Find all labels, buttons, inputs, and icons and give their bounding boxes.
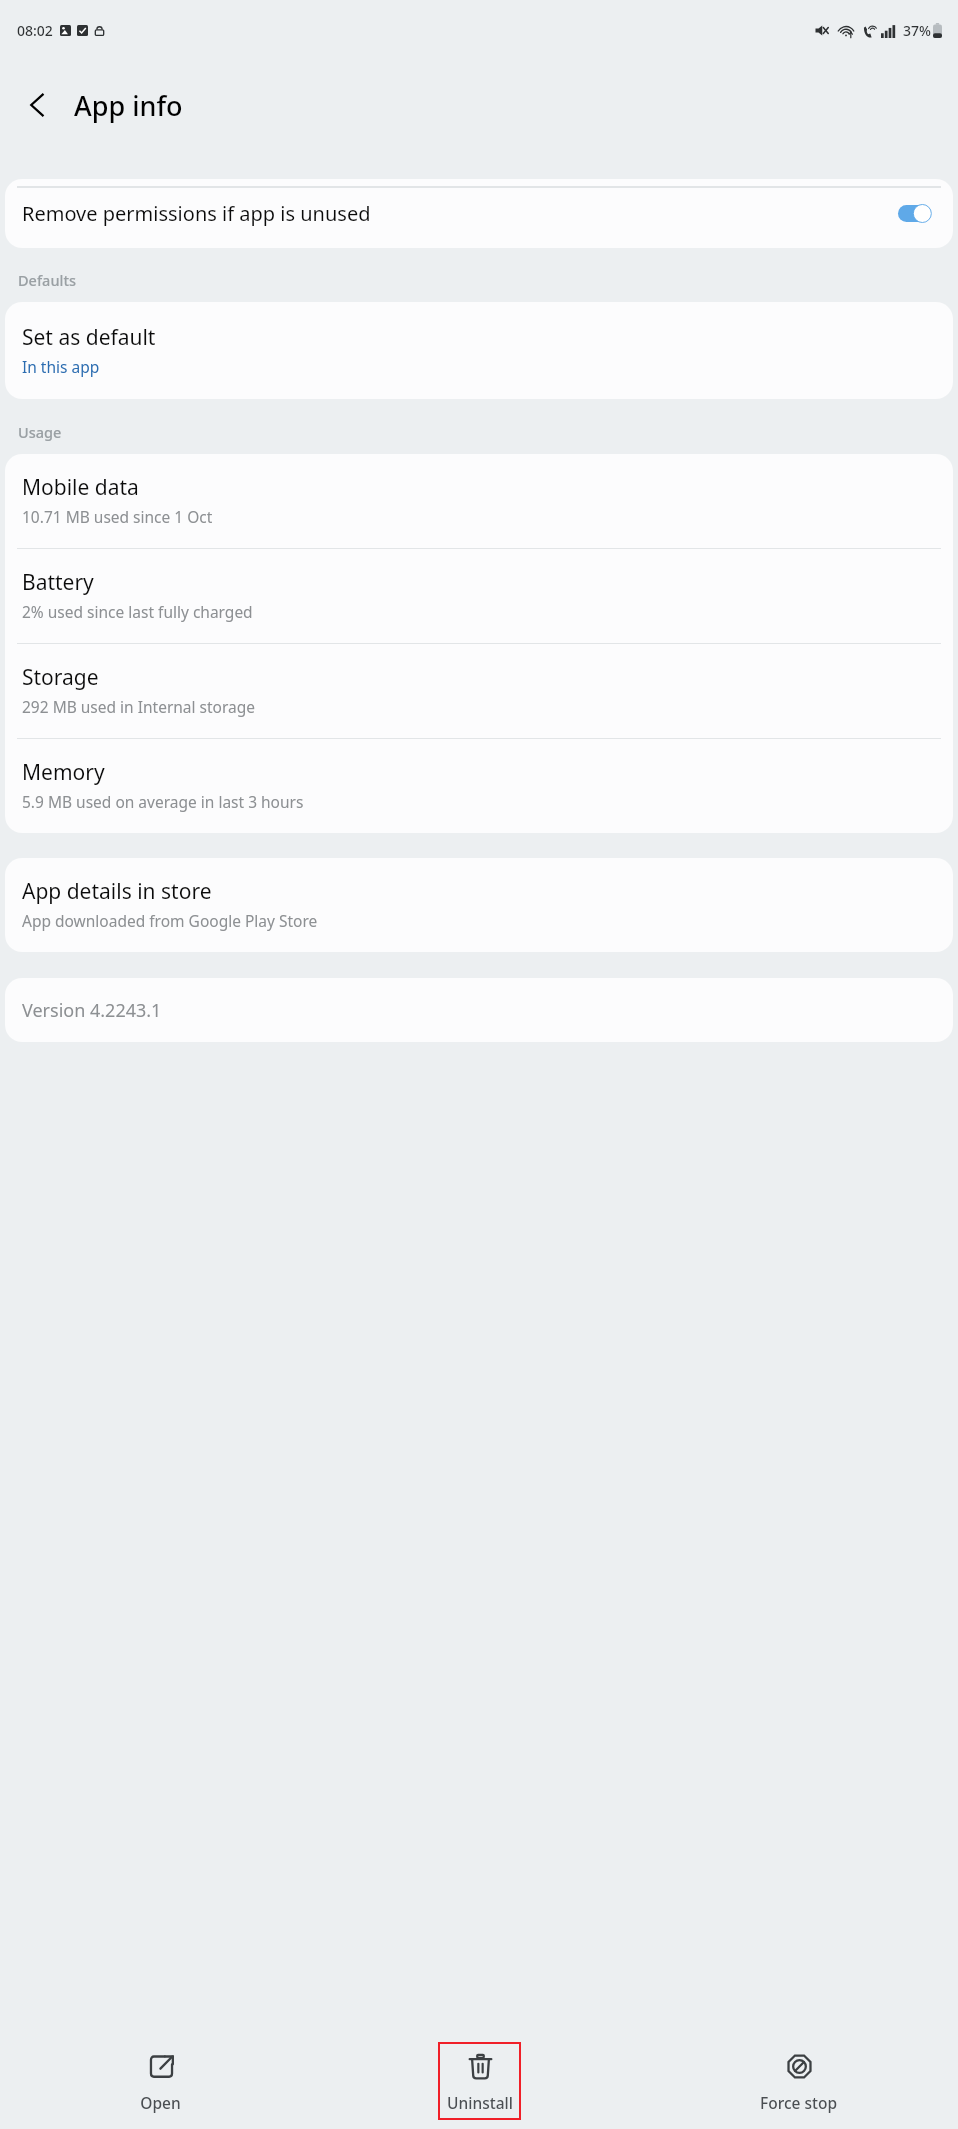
staticText: Force stop — [760, 2092, 837, 2113]
staticText: 5.9 MB used on average in last 3 hours — [22, 791, 304, 812]
staticText: 10.71 MB used since 1 Oct — [22, 506, 213, 527]
staticText: App details in store — [22, 877, 212, 906]
button[interactable]: Mobile data — [5, 454, 953, 548]
staticText: Remove permissions if app is unused — [22, 200, 890, 227]
button[interactable]: Storage — [5, 644, 953, 738]
staticText: Version 4.2243.1 — [22, 998, 162, 1023]
staticText: Defaults — [18, 270, 76, 290]
button[interactable]: Force stop — [757, 2042, 840, 2120]
staticText: Storage — [22, 663, 99, 692]
button[interactable]: Set as default — [5, 302, 953, 399]
staticText: In this app — [22, 356, 100, 377]
staticText: Uninstall — [447, 2092, 513, 2113]
staticText: Battery — [22, 568, 94, 597]
staticText: Open — [140, 2092, 181, 2113]
staticText: 37% — [903, 21, 931, 40]
staticText: 292 MB used in Internal storage — [22, 696, 256, 717]
staticText: 2% used since last fully charged — [22, 601, 253, 622]
other: Uninstall — [467, 2053, 494, 2080]
staticText: Set as default — [22, 323, 156, 352]
button[interactable]: Memory — [5, 739, 953, 833]
other: Force stop — [786, 2053, 813, 2080]
staticText: Mobile data — [22, 473, 139, 502]
staticText: Usage — [18, 422, 62, 442]
staticText: Memory — [22, 758, 105, 787]
button[interactable]: Remove permissions toggle — [898, 205, 931, 222]
button[interactable]: Battery — [5, 549, 953, 643]
other: Open — [148, 2053, 175, 2080]
staticText: App downloaded from Google Play Store — [22, 910, 318, 931]
button[interactable]: Back — [14, 81, 62, 129]
button[interactable]: App details in store — [5, 858, 953, 952]
button[interactable]: Remove permissions if app is unused — [5, 179, 953, 248]
staticText: 08:02 — [17, 21, 53, 40]
staticText: App info — [74, 87, 183, 124]
button[interactable]: Uninstall — [440, 2044, 519, 2118]
button[interactable]: Open — [119, 2042, 202, 2120]
button[interactable]: Version 4.2243.1 — [5, 978, 953, 1042]
